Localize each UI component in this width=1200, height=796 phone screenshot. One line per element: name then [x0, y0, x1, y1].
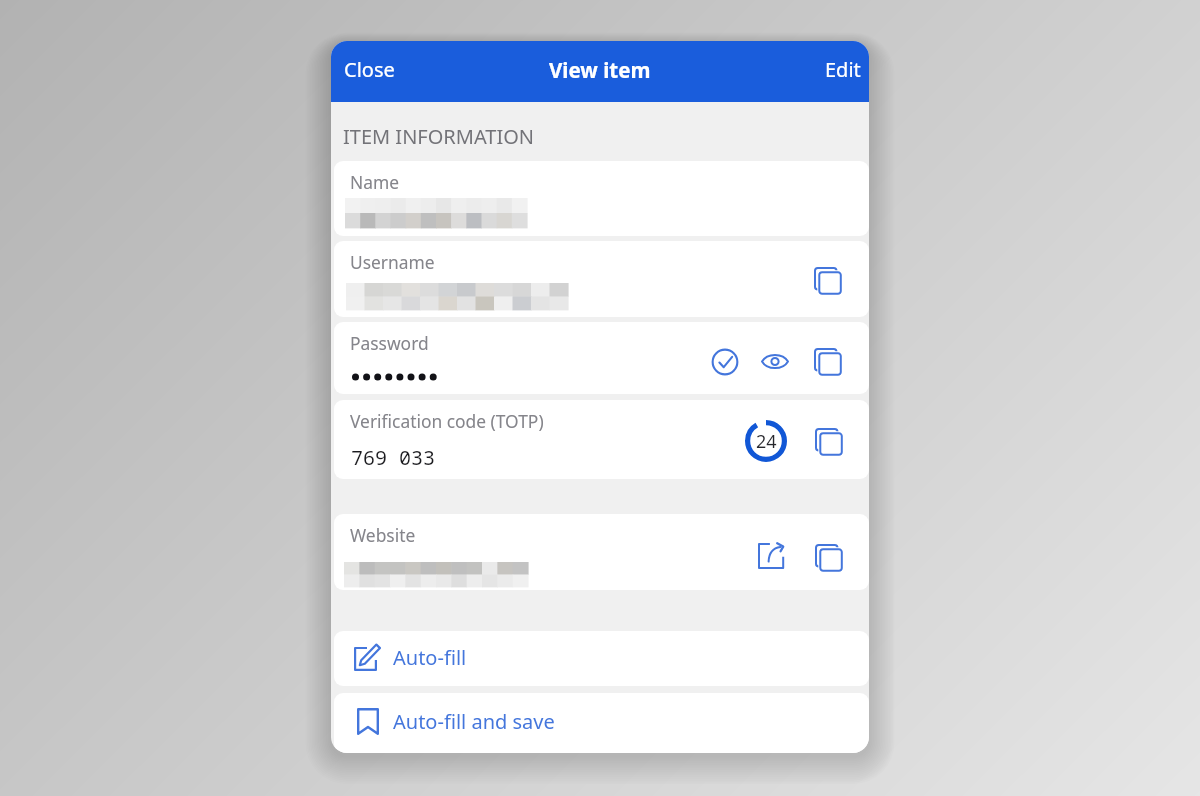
staticText: Username: [350, 250, 435, 274]
button[interactable]: Close: [331, 47, 409, 92]
button[interactable]: Copy: [815, 544, 842, 571]
button[interactable]: Copy: [815, 428, 842, 455]
button[interactable]: Edit: [811, 47, 869, 92]
button[interactable]: Auto-fill: [334, 631, 869, 686]
button[interactable]: Copy: [814, 348, 841, 375]
staticText: Verification code (TOTP): [350, 409, 544, 433]
staticText: Auto-fill and save: [393, 708, 555, 735]
button[interactable]: Toggle password visibility: [761, 353, 789, 370]
button[interactable]: Open website: [758, 543, 785, 570]
staticText: 769 033: [351, 444, 435, 471]
button[interactable]: Verification code (TOTP): [334, 400, 869, 479]
staticText: Edit: [825, 56, 861, 83]
staticText: Auto-fill: [393, 644, 467, 671]
button[interactable]: Auto-fill and save: [334, 693, 869, 753]
button[interactable]: Check password: [711, 348, 739, 376]
staticText: View item: [549, 56, 651, 84]
staticText: Website: [350, 523, 416, 547]
button[interactable]: Website: [334, 514, 869, 590]
staticText: ITEM INFORMATION: [343, 123, 535, 150]
staticText: Password: [350, 331, 429, 355]
button[interactable]: Username: [334, 241, 869, 317]
staticText: 24: [756, 429, 777, 454]
staticText: Name: [350, 170, 400, 194]
button[interactable]: Password: [334, 322, 869, 394]
button[interactable]: Copy: [814, 267, 841, 294]
staticText: Close: [344, 56, 395, 83]
button[interactable]: Name: [334, 161, 869, 236]
button[interactable]: Time remaining: [744, 419, 788, 463]
